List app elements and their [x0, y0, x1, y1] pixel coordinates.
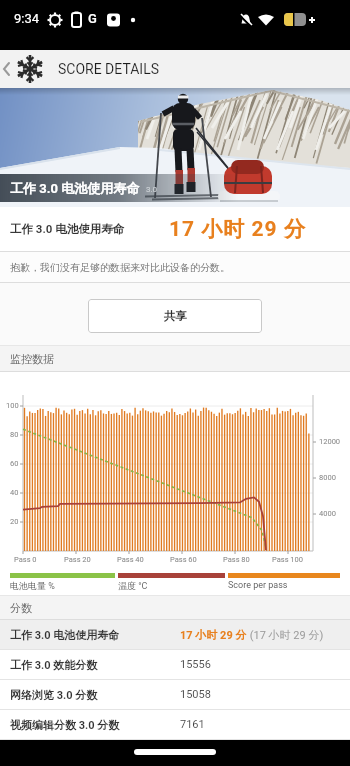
- staticText: 4000: [319, 509, 336, 518]
- staticText: 温度 °C: [118, 580, 148, 591]
- staticText: 工作 3.0 效能分数: [10, 658, 98, 672]
- staticText: Pass 20: [64, 555, 91, 564]
- staticText: Pass 40: [117, 555, 144, 564]
- button[interactable]: 共享: [88, 299, 262, 333]
- staticText: 监控数据: [10, 352, 54, 366]
- staticText: 网络浏览 3.0 分数: [10, 688, 98, 702]
- staticText: 15058: [180, 688, 211, 701]
- staticText: 共享: [164, 309, 187, 323]
- staticText: 9:34: [14, 11, 40, 26]
- staticText: 工作 3.0 电池使用寿命: [10, 628, 120, 642]
- staticText: 8000: [319, 473, 336, 482]
- button[interactable]: SCORE DETAILS: [0, 50, 350, 88]
- staticText: 40: [10, 488, 19, 497]
- staticText: 15556: [180, 658, 211, 671]
- staticText: 3.0: [146, 185, 158, 194]
- button[interactable]: 工作 3.0 效能分数: [0, 650, 350, 680]
- staticText: 17 小时 29 分: [180, 628, 247, 642]
- staticText: 抱歉，我们没有足够的数据来对比此设备的分数。: [10, 261, 230, 274]
- staticText: 17 小时 29 分: [169, 216, 306, 242]
- staticText: 电池电量 %: [10, 580, 55, 591]
- button[interactable]: 工作 3.0 电池使用寿命: [0, 620, 350, 650]
- staticText: 分数: [10, 601, 32, 615]
- staticText: 工作 3.0 电池使用寿命: [10, 180, 140, 196]
- staticText: Score per pass: [228, 580, 288, 591]
- staticText: 100: [6, 401, 19, 410]
- staticText: 工作 3.0 电池使用寿命: [10, 222, 125, 236]
- button[interactable]: [134, 749, 216, 755]
- staticText: Pass 0: [14, 555, 37, 564]
- staticText: 20: [10, 517, 19, 526]
- staticText: Pass 60: [170, 555, 197, 564]
- button[interactable]: 网络浏览 3.0 分数: [0, 680, 350, 710]
- staticText: 80: [10, 430, 19, 439]
- staticText: Pass 80: [223, 555, 250, 564]
- staticText: 7161: [180, 718, 205, 731]
- button[interactable]: 视频编辑分数 3.0 分数: [0, 710, 350, 740]
- staticText: 视频编辑分数 3.0 分数: [10, 718, 120, 732]
- staticText: SCORE DETAILS: [58, 61, 160, 77]
- staticText: 12000: [319, 437, 341, 446]
- staticText: 60: [10, 459, 19, 468]
- staticText: Pass 100: [272, 555, 304, 564]
- staticText: G: [88, 11, 97, 26]
- staticText: (17 小时 29 分): [247, 628, 324, 642]
